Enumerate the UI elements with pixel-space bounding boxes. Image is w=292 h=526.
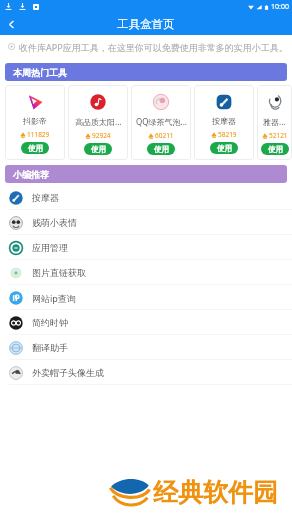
staticText: 按摩器 — [212, 116, 236, 126]
staticText: 使用 — [268, 145, 283, 154]
button[interactable]: 抖影帝 — [5, 85, 65, 160]
staticText: 应用管理 — [32, 242, 68, 253]
staticText: 92924 — [92, 131, 111, 140]
staticText: 按摩器 — [32, 192, 59, 203]
button[interactable]: 高品质太阳... — [68, 85, 128, 160]
staticText: 使用 — [28, 144, 43, 153]
staticText: 52121 — [269, 131, 288, 140]
staticText: QQ绿茶气泡... — [136, 116, 187, 127]
staticText: 使用 — [154, 145, 169, 154]
button[interactable]: 雅器... — [257, 85, 292, 160]
staticText: 工具盒首页 — [117, 17, 175, 31]
staticText: 雅器... — [263, 116, 286, 127]
staticText: 使用 — [217, 144, 232, 153]
staticText: 收件库APP应用工具，在这里你可以免费使用非常多的实用小工具。 — [19, 41, 288, 53]
button[interactable]: 图片直链获取 — [0, 260, 292, 285]
staticText: 贱萌小表情 — [32, 217, 77, 228]
button[interactable]: 简约时钟 — [0, 310, 292, 335]
staticText: 高品质太阳... — [75, 116, 122, 127]
staticText: 外卖帽子头像生成 — [32, 367, 104, 378]
staticText: 60211 — [155, 131, 174, 140]
staticText: 网站ip查询 — [32, 292, 76, 304]
staticText: 抖影帝 — [23, 116, 47, 126]
staticText: 小编推荐 — [13, 169, 49, 180]
staticText: 简约时钟 — [32, 317, 68, 328]
staticText: 58219 — [218, 130, 237, 139]
button[interactable]: 使用 — [147, 143, 175, 155]
button[interactable]: 使用 — [210, 142, 238, 154]
staticText: 10:00 — [271, 2, 289, 12]
button[interactable]: 贱萌小表情 — [0, 210, 292, 235]
button[interactable]: 按摩器 — [194, 85, 254, 160]
button[interactable]: 网站ip查询 — [0, 285, 292, 310]
staticText: 使用 — [91, 145, 106, 154]
button[interactable]: 使用 — [21, 142, 49, 154]
staticText: 111829 — [27, 130, 50, 139]
button[interactable]: 使用 — [84, 143, 112, 155]
button[interactable]: 应用管理 — [0, 235, 292, 260]
staticText: 本周热门工具 — [13, 67, 67, 78]
button[interactable]: QQ绿茶气泡... — [131, 85, 191, 160]
button[interactable]: 外卖帽子头像生成 — [0, 360, 292, 385]
button[interactable]: 翻译助手 — [0, 335, 292, 360]
staticText: 翻译助手 — [32, 342, 68, 353]
staticText: 图片直链获取 — [32, 267, 86, 278]
staticText: 经典软件园 — [153, 477, 278, 508]
button[interactable]: 按摩器 — [0, 185, 292, 210]
button[interactable]: 返回 — [0, 13, 22, 35]
button[interactable]: 使用 — [261, 143, 289, 155]
